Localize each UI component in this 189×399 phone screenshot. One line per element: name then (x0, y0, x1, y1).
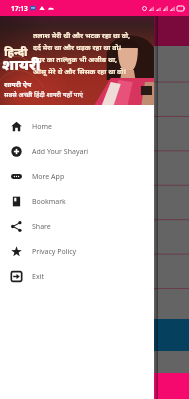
button[interactable]: Exit (0, 264, 154, 289)
button[interactable]: Back (137, 376, 157, 396)
staticText: सबसे अच्छी हिंदी शायरी यहाँ पाएं (4, 90, 83, 99)
button[interactable]: Bookmark (0, 189, 154, 214)
button[interactable] (0, 148, 189, 182)
button[interactable]: Home (0, 114, 154, 139)
button[interactable]: Add Your Shayari (0, 139, 154, 164)
staticText: शायरी (2, 54, 41, 74)
button[interactable]: Share (0, 214, 154, 239)
staticText: Add Your Shayari (32, 147, 89, 157)
button[interactable] (0, 182, 189, 216)
button[interactable] (0, 284, 189, 318)
button[interactable] (0, 216, 189, 250)
staticText: Exit (32, 272, 44, 282)
button[interactable] (0, 80, 189, 114)
staticText: Privacy Policy (32, 247, 77, 257)
staticText: Bookmark (32, 197, 66, 207)
staticText: Share (32, 222, 51, 232)
button[interactable]: More App (0, 164, 154, 189)
staticText: हिन्दी (4, 44, 28, 59)
button[interactable] (0, 114, 189, 148)
staticText: Home (32, 122, 52, 132)
button[interactable] (0, 46, 189, 80)
staticText: तलाश मेरी थी और भटक रहा था वो, दर्द मेरा… (33, 31, 130, 76)
staticText: शायरी ऐप (4, 80, 32, 90)
button[interactable]: Privacy Policy (0, 239, 154, 264)
staticText: More App (32, 172, 65, 182)
staticText: 17:13 (11, 4, 28, 13)
button[interactable] (0, 250, 189, 284)
